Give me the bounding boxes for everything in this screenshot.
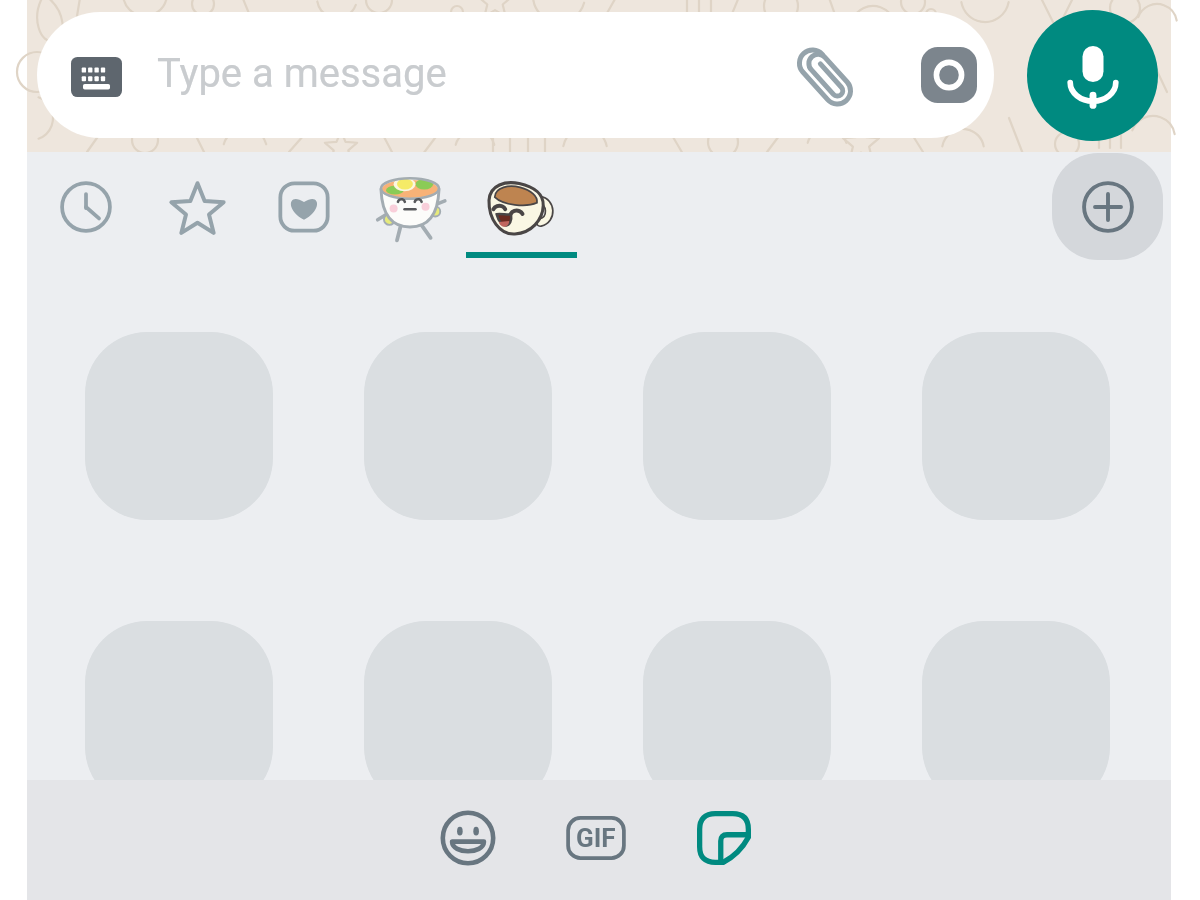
button[interactable]: Sticker pack: [250, 152, 358, 262]
button[interactable]: Sticker pack: [356, 152, 464, 262]
button[interactable]: Attach: [785, 12, 865, 138]
button[interactable]: Keyboard: [37, 12, 994, 138]
button[interactable]: Sticker: [364, 332, 552, 520]
button[interactable]: Sticker: [922, 621, 1110, 809]
button[interactable]: Sticker pack: [32, 152, 140, 262]
staticText: GIF: [576, 823, 616, 853]
button[interactable]: Camera: [909, 12, 989, 138]
button[interactable]: GIF: [548, 790, 644, 886]
button[interactable]: Voice message: [1027, 10, 1158, 141]
button[interactable]: Sticker: [364, 621, 552, 809]
button[interactable]: Keyboard: [60, 12, 132, 138]
button[interactable]: Sticker: [85, 332, 273, 520]
staticText: Type a message: [157, 50, 447, 97]
button[interactable]: Sticker pack: [467, 152, 575, 262]
button[interactable]: Sticker: [85, 621, 273, 809]
button[interactable]: Sticker: [922, 332, 1110, 520]
button[interactable]: Sticker pack: [143, 152, 251, 262]
button[interactable]: Stickers: [676, 790, 772, 886]
button[interactable]: Sticker: [643, 621, 831, 809]
button[interactable]: Sticker: [643, 332, 831, 520]
button[interactable]: Emoji: [420, 790, 516, 886]
button[interactable]: Add sticker pack: [1052, 153, 1163, 260]
